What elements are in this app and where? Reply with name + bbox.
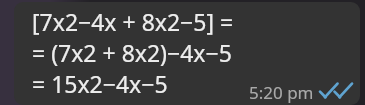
staticText: 5:20 pm — [249, 81, 314, 104]
staticText: = (7x2 + 8x2)−4x−5 — [32, 37, 232, 68]
button[interactable]: [7x2−4x + 8x2−5] = — [14, 2, 360, 105]
staticText: [7x2−4x + 8x2−5] = — [32, 6, 234, 37]
staticText: = 15x2−4x−5 — [32, 68, 168, 99]
other: Message read — [320, 85, 356, 100]
